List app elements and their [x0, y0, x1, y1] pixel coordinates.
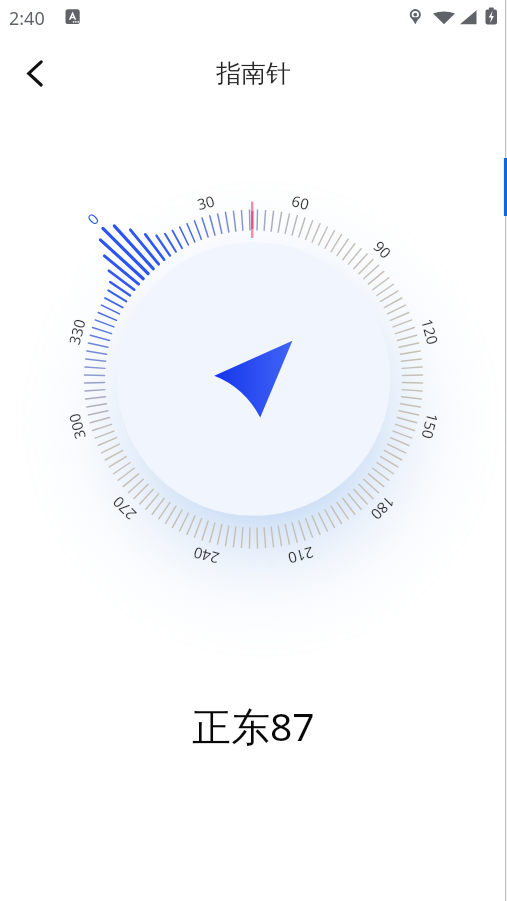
staticText: 指南针	[216, 58, 291, 89]
staticText: 正东87	[192, 699, 315, 752]
staticText: 2:40	[9, 6, 45, 31]
button[interactable]: Back	[11, 50, 59, 98]
